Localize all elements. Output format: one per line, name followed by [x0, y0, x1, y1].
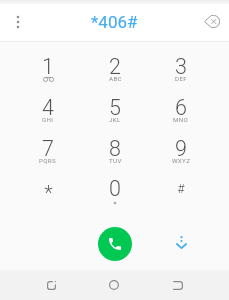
button[interactable]: Backspace	[199, 9, 224, 34]
staticText: *	[44, 181, 53, 204]
button[interactable]: 2	[82, 53, 148, 93]
button[interactable]: 8	[82, 135, 148, 175]
staticText: WXYZ	[172, 157, 191, 164]
staticText: 7	[42, 136, 54, 161]
button[interactable]: Call	[98, 227, 132, 261]
button[interactable]: 3	[148, 53, 214, 93]
button[interactable]: Recents	[36, 270, 66, 300]
button[interactable]: More options	[6, 10, 30, 34]
button[interactable]: 9	[148, 135, 214, 175]
button[interactable]: 0	[82, 175, 148, 215]
staticText: 2	[109, 54, 121, 79]
staticText: JKL	[109, 116, 121, 123]
staticText: ABC	[109, 75, 122, 82]
button[interactable]: 1	[15, 53, 81, 93]
staticText: 4	[42, 95, 54, 120]
staticText: PQRS	[39, 157, 57, 164]
staticText: 1	[42, 54, 54, 79]
staticText: GHI	[42, 116, 54, 123]
button[interactable]: 7	[15, 135, 81, 175]
button[interactable]: 6	[148, 94, 214, 134]
staticText: 9	[175, 136, 187, 161]
button[interactable]: 5	[82, 94, 148, 134]
staticText: 3	[175, 54, 187, 79]
button[interactable]: #	[148, 175, 214, 215]
button[interactable]: Home	[99, 270, 129, 300]
staticText: 6	[175, 95, 187, 120]
button[interactable]: Back	[163, 270, 193, 300]
button[interactable]: 4	[15, 94, 81, 134]
staticText: DEF	[175, 75, 188, 82]
staticText: #	[177, 181, 185, 196]
staticText: 8	[109, 136, 121, 161]
staticText: TUV	[109, 157, 122, 164]
staticText: MNO	[173, 116, 189, 123]
staticText: 5	[109, 95, 121, 120]
button[interactable]: Hide keypad	[169, 230, 193, 254]
staticText: 0	[109, 176, 121, 201]
button[interactable]: *	[15, 175, 81, 215]
staticText: *406#	[91, 12, 138, 32]
